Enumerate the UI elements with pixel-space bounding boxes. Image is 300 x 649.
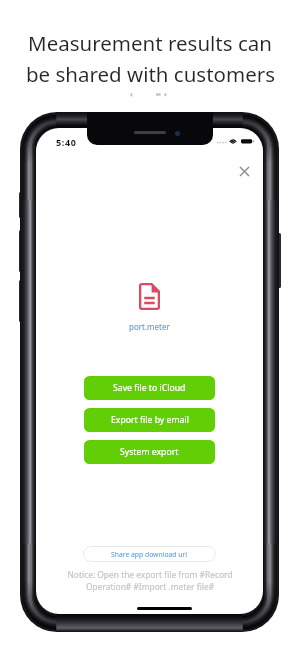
staticText: Notice: Open the export file from #Recor… (67, 569, 233, 593)
button[interactable]: Export file by email (84, 408, 215, 432)
staticText: Save file to iCloud (113, 382, 186, 394)
button[interactable]: System export (84, 440, 215, 464)
button[interactable]: Save file to iCloud (84, 376, 215, 400)
button[interactable]: Close (234, 161, 254, 181)
staticText: be shared with customers (26, 60, 275, 88)
staticText: port.meter (129, 321, 170, 332)
staticText: Measurement results can (28, 29, 272, 57)
staticText: 5:40 (56, 136, 77, 148)
staticText: Export file by email (111, 414, 189, 426)
staticText: Share app download url (111, 550, 188, 559)
button[interactable]: Share app download url (83, 546, 216, 562)
staticText: System export (120, 446, 179, 458)
staticText: in this way (99, 91, 201, 119)
